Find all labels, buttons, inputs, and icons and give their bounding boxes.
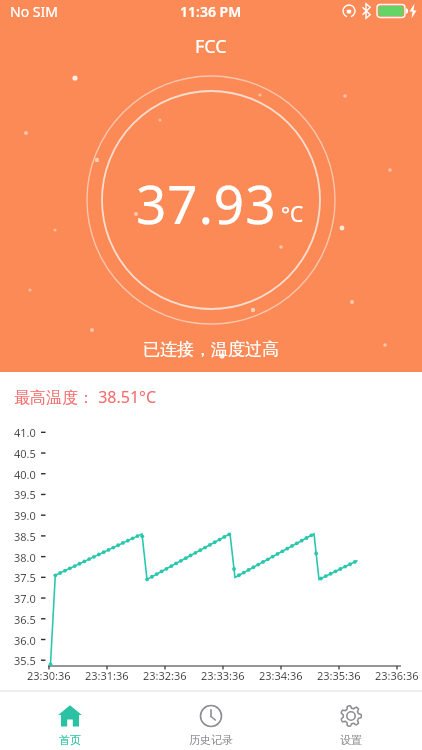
staticText: 已连接，温度过高 [143, 339, 279, 360]
button[interactable]: 首页 [0, 692, 140, 750]
staticText: 36.5 [14, 612, 36, 627]
button[interactable]: 历史记录 [141, 692, 281, 750]
staticText: 39.0 [14, 508, 36, 523]
staticText: 历史记录 [189, 733, 233, 747]
staticText: 40.0 [14, 467, 36, 482]
staticText: 36.0 [14, 633, 36, 648]
staticText: 38.5 [14, 529, 36, 544]
staticText: 37.93 [136, 167, 277, 239]
staticText: 11:36 PM [180, 2, 242, 20]
staticText: 23:32:36 [143, 668, 187, 683]
staticText: 最高温度： 38.51°C [14, 386, 157, 405]
staticText: 23:36:36 [375, 668, 419, 683]
button[interactable]: 设置 [281, 692, 421, 750]
staticText: 41.0 [14, 425, 36, 440]
staticText: °C [281, 200, 304, 229]
staticText: 23:35:36 [317, 668, 361, 683]
staticText: 23:33:36 [201, 668, 245, 683]
staticText: 37.0 [14, 591, 36, 606]
staticText: 40.5 [14, 446, 36, 461]
staticText: 首页 [59, 733, 81, 747]
staticText: 设置 [340, 733, 362, 747]
staticText: 38.0 [14, 550, 36, 565]
staticText: 39.5 [14, 487, 36, 502]
staticText: 23:30:36 [27, 668, 71, 683]
staticText: 37.5 [14, 570, 36, 585]
staticText: FCC [195, 34, 227, 58]
staticText: 23:34:36 [259, 668, 303, 683]
staticText: 35.5 [14, 653, 36, 668]
staticText: No SIM [10, 2, 58, 20]
staticText: 23:31:36 [85, 668, 129, 683]
